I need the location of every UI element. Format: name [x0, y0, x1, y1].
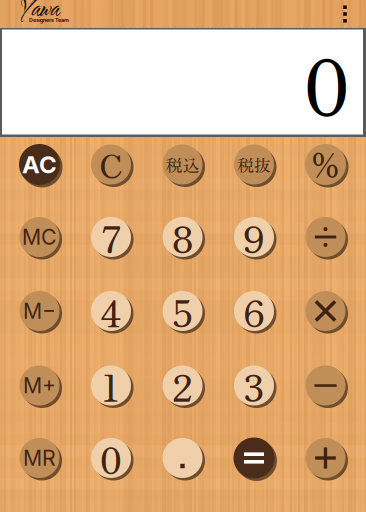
- staticText: MR: [23, 445, 56, 471]
- button[interactable]: Subtract: [302, 362, 348, 408]
- staticText: C: [99, 141, 122, 188]
- button[interactable]: More options: [332, 0, 358, 28]
- staticText: 3: [243, 358, 264, 413]
- button[interactable]: 3: [231, 362, 277, 408]
- staticText: M+: [23, 373, 56, 398]
- button[interactable]: MR: [16, 435, 62, 481]
- button[interactable]: M+: [16, 362, 62, 408]
- button[interactable]: M−: [16, 288, 62, 334]
- button[interactable]: 税込: [159, 141, 205, 187]
- staticText: 0: [303, 26, 351, 138]
- button[interactable]: 5: [159, 288, 205, 334]
- staticText: Designers Team: [29, 17, 69, 23]
- button[interactable]: Add: [302, 435, 348, 481]
- button[interactable]: C: [88, 141, 134, 187]
- staticText: AC: [22, 150, 57, 179]
- button[interactable]: 1: [88, 362, 134, 408]
- button[interactable]: Equals: [230, 434, 277, 481]
- staticText: 9: [243, 210, 265, 264]
- button[interactable]: 8: [159, 214, 205, 260]
- staticText: Yawa: [20, 0, 59, 25]
- staticText: 税抜: [237, 152, 271, 176]
- button[interactable]: 6: [231, 288, 277, 334]
- button[interactable]: Multiply: [302, 288, 348, 334]
- staticText: 5: [172, 284, 193, 338]
- staticText: M−: [23, 298, 56, 324]
- button[interactable]: 7: [88, 214, 134, 260]
- button[interactable]: 4: [88, 288, 134, 334]
- staticText: 税込: [165, 152, 199, 176]
- staticText: 6: [243, 284, 265, 338]
- button[interactable]: MC: [16, 214, 62, 260]
- staticText: 1: [101, 358, 121, 413]
- button[interactable]: %: [302, 141, 349, 188]
- button[interactable]: Divide: [302, 214, 348, 260]
- staticText: %: [310, 142, 341, 187]
- staticText: 4: [100, 284, 122, 338]
- staticText: 0: [99, 431, 122, 485]
- button[interactable]: 9: [231, 214, 277, 260]
- staticText: 8: [171, 210, 193, 264]
- staticText: MC: [22, 224, 57, 250]
- button[interactable]: AC: [16, 141, 63, 188]
- staticText: 7: [101, 210, 121, 264]
- staticText: 2: [172, 358, 193, 413]
- button[interactable]: 税抜: [231, 141, 277, 187]
- button[interactable]: Decimal point: [159, 435, 205, 481]
- button[interactable]: 0: [88, 435, 134, 481]
- button[interactable]: 2: [159, 362, 205, 408]
